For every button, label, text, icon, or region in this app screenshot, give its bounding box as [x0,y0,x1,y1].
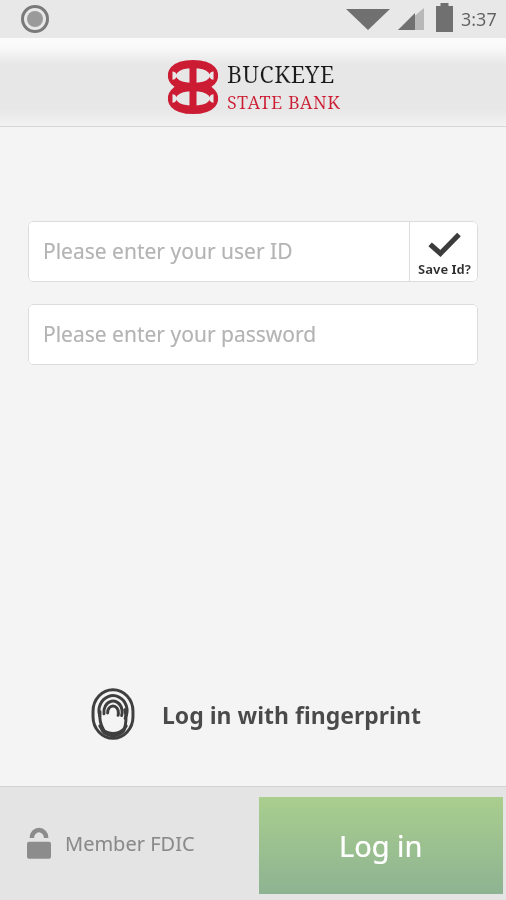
staticText: 3:37 [461,7,497,32]
staticText: Please enter your user ID [43,237,293,266]
button[interactable]: Please enter your user ID [28,221,410,282]
staticText: Save Id? [418,260,471,278]
staticText: STATE BANK [227,90,341,115]
staticText: Log in [339,826,423,865]
button[interactable]: Member FDIC [24,826,195,860]
button[interactable]: Log in [259,797,503,894]
button[interactable]: Log in with fingerprint [0,678,506,750]
staticText: Please enter your password [43,320,317,349]
button[interactable]: Save Id [410,225,478,278]
button[interactable]: Please enter your password [28,304,478,365]
staticText: Member FDIC [65,830,195,857]
staticText: BUCKEYE [227,58,335,89]
staticText: Log in with fingerprint [162,699,421,730]
